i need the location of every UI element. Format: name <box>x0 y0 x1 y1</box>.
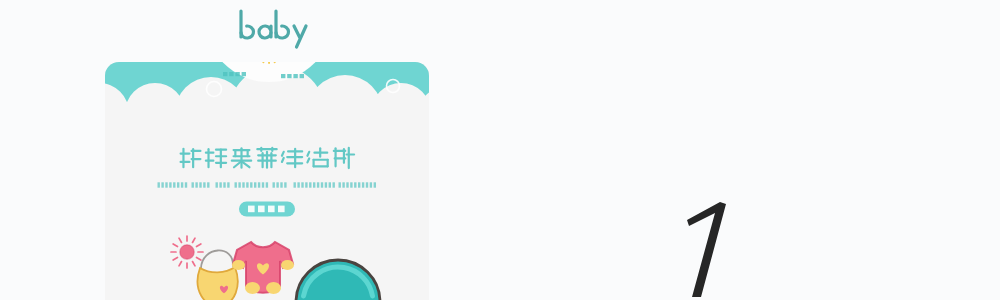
button[interactable]: Baby bottle fruit and vegetable cleanser… <box>105 0 429 300</box>
button[interactable]: Image number 1 <box>660 190 740 300</box>
